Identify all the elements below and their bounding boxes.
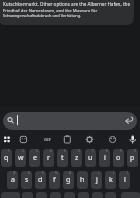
staticText: p (130, 153, 135, 163)
staticText: w (18, 153, 24, 163)
button[interactable] (84, 134, 96, 146)
staticText: z (75, 153, 79, 163)
staticText: 6 (78, 149, 80, 153)
staticText: ) (127, 171, 128, 175)
button[interactable]: l (119, 171, 130, 189)
staticText: a (11, 175, 15, 185)
button[interactable]: d (35, 171, 46, 189)
staticText: e (33, 153, 37, 163)
button[interactable] (92, 192, 103, 198)
button[interactable]: p (127, 149, 138, 167)
staticText: 1 (8, 149, 10, 153)
button[interactable] (36, 192, 47, 198)
staticText: g (66, 175, 71, 185)
button[interactable]: e (29, 149, 40, 167)
staticText: l (124, 175, 126, 185)
staticText: Friedhof der Namenlosen, and the Museum … (3, 7, 98, 13)
button[interactable]: g (63, 171, 74, 189)
staticText: k (109, 175, 113, 185)
staticText: GIF (44, 137, 51, 143)
staticText: h (80, 175, 85, 185)
staticText: # (28, 171, 30, 175)
staticText: s (25, 175, 29, 185)
button[interactable] (64, 192, 75, 198)
staticText: q (4, 153, 9, 163)
button[interactable]: i (99, 149, 110, 167)
staticText: 2 (22, 149, 24, 153)
button[interactable]: Kutschkermarkt. Other options are the Al… (0, 0, 134, 25)
button[interactable]: k (105, 171, 116, 189)
staticText: d (38, 175, 43, 185)
staticText: o (116, 153, 121, 163)
button[interactable] (105, 192, 116, 198)
button[interactable]: z (71, 149, 82, 167)
button[interactable] (107, 134, 119, 146)
staticText: t (61, 153, 64, 163)
button[interactable] (78, 192, 89, 198)
staticText: - (85, 171, 86, 175)
staticText: 0 (134, 149, 136, 153)
button[interactable] (22, 192, 33, 198)
button[interactable]: GIF (42, 136, 52, 144)
staticText: 5 (64, 149, 66, 153)
staticText: @ (13, 171, 16, 175)
button[interactable]: q (1, 149, 12, 167)
button[interactable]: j (91, 171, 102, 189)
staticText: Kutschkermarkt. Other options are the Al… (3, 1, 130, 7)
staticText: i (104, 153, 106, 163)
button[interactable]: h (77, 171, 88, 189)
button[interactable] (17, 134, 29, 146)
button[interactable] (61, 134, 73, 146)
staticText: 4 (50, 149, 52, 153)
staticText: & (69, 171, 72, 175)
staticText: $ (42, 171, 44, 175)
button[interactable] (127, 134, 139, 146)
staticText: ( (113, 171, 114, 175)
button[interactable] (121, 192, 140, 198)
button[interactable]: r (43, 149, 54, 167)
button[interactable]: a (7, 171, 18, 189)
staticText: u (88, 153, 93, 163)
staticText: + (98, 171, 100, 175)
staticText: 8 (106, 149, 108, 153)
button[interactable] (1, 134, 13, 146)
button[interactable]: s (21, 171, 32, 189)
staticText: f (53, 175, 56, 185)
button[interactable]: u (85, 149, 96, 167)
button[interactable] (3, 112, 137, 130)
staticText: 7 (92, 149, 94, 153)
button[interactable]: f (49, 171, 60, 189)
staticText: j (96, 175, 98, 185)
staticText: 3 (36, 149, 38, 153)
button[interactable]: t (57, 149, 68, 167)
staticText: r (47, 153, 50, 163)
staticText: Schwangerschaftsabbruch und Verhütung. (3, 13, 82, 18)
button[interactable]: w (15, 149, 26, 167)
button[interactable] (50, 192, 61, 198)
button[interactable]: o (113, 149, 124, 167)
staticText: % (55, 171, 58, 175)
staticText: 9 (120, 149, 122, 153)
button[interactable] (1, 192, 20, 198)
